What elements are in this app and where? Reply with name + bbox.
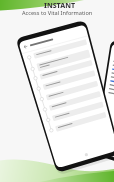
staticText: Access to Vital Information [22, 9, 93, 17]
staticText: INSTANT [44, 1, 75, 11]
button[interactable]: Instant access banner [0, 0, 114, 182]
